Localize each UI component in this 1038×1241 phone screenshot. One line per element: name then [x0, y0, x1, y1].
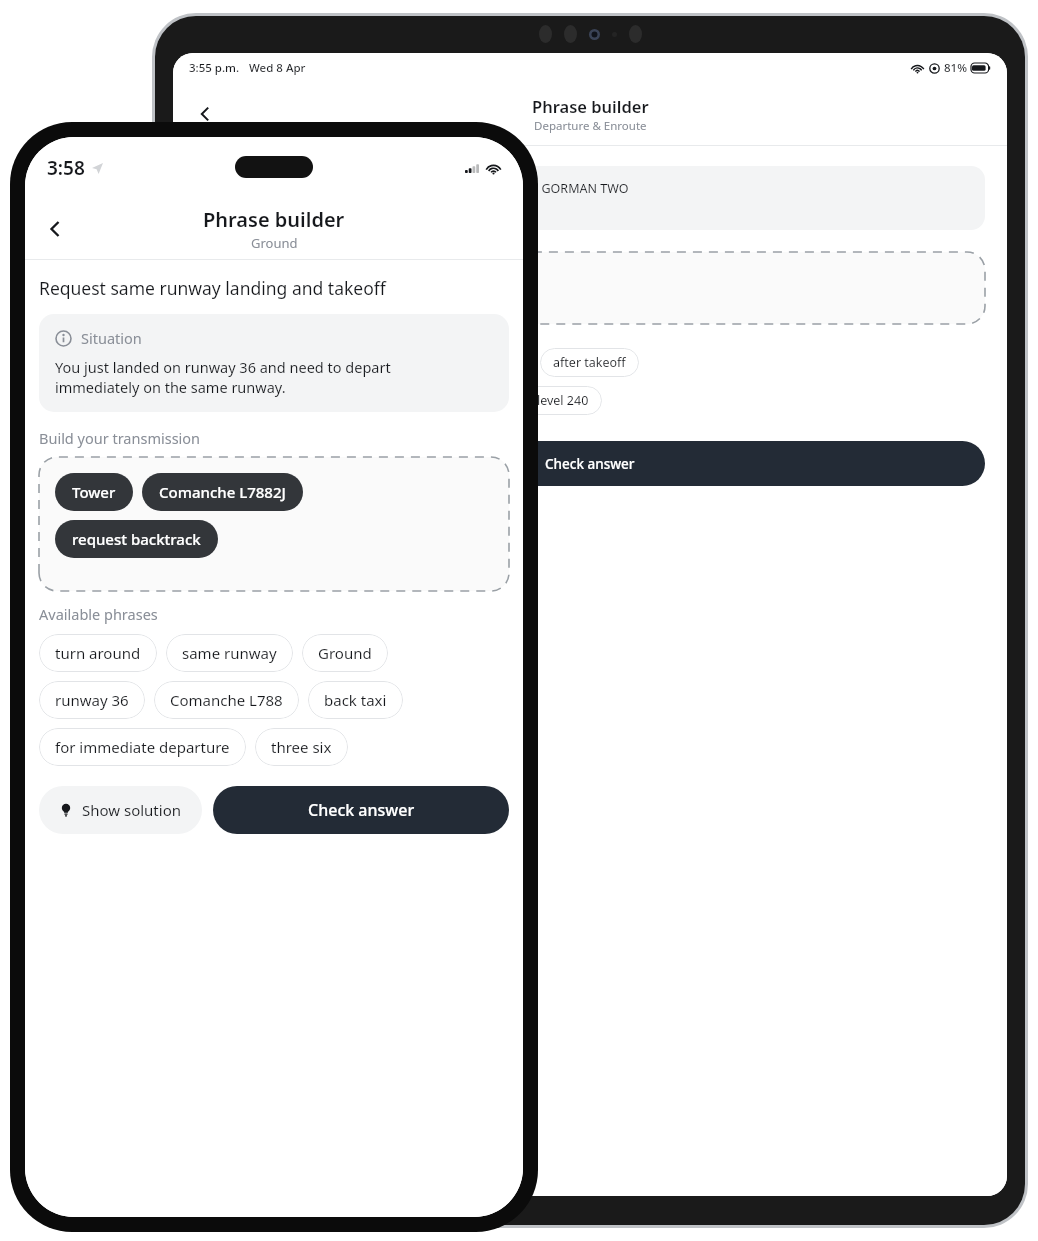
staticText: Phrase builder — [532, 95, 649, 117]
button[interactable]: for immediate departure — [39, 728, 246, 766]
button[interactable]: same runway — [166, 634, 293, 672]
staticText: back taxi — [324, 690, 387, 710]
staticText: request backtrack — [72, 529, 201, 549]
staticText: three six — [271, 737, 332, 757]
button[interactable]: request backtrack — [55, 520, 218, 558]
button[interactable]: Check answer — [213, 786, 509, 834]
button[interactable]: after takeoff — [540, 348, 639, 377]
staticText: 81% — [944, 60, 967, 76]
button[interactable]: GORMAN TWO departure — [209, 266, 389, 297]
staticText: runway 36 — [55, 690, 129, 710]
staticText: Wed 8 Apr — [249, 60, 306, 76]
button[interactable]: runway 36 — [39, 681, 145, 719]
button[interactable]: three six — [255, 728, 348, 766]
button[interactable]: after departure — [195, 386, 312, 415]
button[interactable]: 125.70 — [335, 348, 401, 377]
button[interactable]: Back — [33, 207, 77, 251]
staticText: same runway — [182, 643, 277, 663]
staticText: Build your transmission — [39, 428, 201, 448]
staticText: flight level 240 — [503, 392, 589, 409]
staticText: Phrase builder — [203, 206, 345, 233]
button[interactable]: squawk 4521 — [378, 386, 481, 415]
staticText: Check answer — [545, 455, 635, 473]
button[interactable]: turn around — [39, 634, 157, 672]
button[interactable]: Back — [183, 92, 227, 136]
staticText: Tower — [72, 482, 116, 502]
staticText: turn around — [55, 643, 141, 663]
staticText: Cleared you to Los Angeles International… — [213, 180, 629, 216]
button[interactable]: departure 125.7 — [410, 348, 531, 377]
button[interactable]: back taxi — [308, 681, 403, 719]
button[interactable]: Comanche L788 — [154, 681, 299, 719]
staticText: Situation — [81, 328, 142, 348]
staticText: Ground — [251, 234, 298, 252]
staticText: Departure & Enroute — [534, 118, 647, 134]
staticText: 3:55 p.m. — [189, 60, 240, 76]
staticText: Comanche L788 — [170, 690, 283, 710]
staticText: after takeoff — [553, 354, 626, 371]
staticText: Check answer — [308, 799, 415, 821]
staticText: Available phrases — [39, 604, 158, 624]
staticText: You just landed on runway 36 and need to… — [55, 357, 391, 398]
staticText: Show solution — [82, 800, 182, 820]
staticText: GORMAN TWO departure — [223, 273, 375, 290]
staticText: after departure — [208, 392, 299, 409]
button[interactable]: Show solution — [39, 786, 202, 834]
staticText: departure 125.7 — [423, 354, 518, 371]
staticText: Ground — [318, 643, 372, 663]
staticText: for immediate departure — [55, 737, 230, 757]
button[interactable]: transponder 4521 — [195, 348, 326, 377]
button[interactable]: LAX — [321, 386, 369, 415]
button[interactable]: Tower — [55, 473, 133, 511]
staticText: Request same runway landing and takeoff — [39, 276, 386, 300]
staticText: Comanche L7882J — [159, 482, 286, 502]
button[interactable]: flight level 240 — [490, 386, 602, 415]
staticText: 3:58 — [47, 155, 85, 181]
button[interactable]: Check answer — [195, 441, 985, 486]
button[interactable]: Comanche L7882J — [142, 473, 303, 511]
staticText: transponder 4521 — [208, 354, 313, 371]
button[interactable]: Ground — [302, 634, 388, 672]
staticText: 125.70 — [348, 354, 388, 371]
